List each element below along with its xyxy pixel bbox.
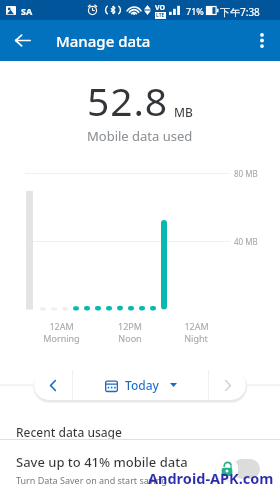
staticText: VO bbox=[155, 3, 166, 13]
staticText: 71% bbox=[186, 5, 204, 17]
button[interactable]: Previous day bbox=[34, 370, 72, 400]
staticText: 下午7:38 bbox=[220, 5, 260, 19]
staticText: 80 MB bbox=[234, 168, 258, 179]
staticText: Mobile data used bbox=[87, 127, 193, 145]
staticText: Morning bbox=[43, 332, 80, 344]
staticText: 12AM bbox=[49, 320, 74, 332]
button[interactable]: More options bbox=[244, 20, 280, 61]
staticText: 52.8 bbox=[87, 74, 168, 127]
staticText: SA bbox=[21, 5, 33, 17]
staticText: Android-APK.com bbox=[148, 468, 274, 488]
staticText: Today bbox=[125, 377, 159, 393]
button[interactable]: Save up to 41% mobile data bbox=[0, 440, 280, 498]
staticText: MB bbox=[174, 104, 193, 120]
staticText: 12AM bbox=[184, 320, 209, 332]
staticText: LTE bbox=[156, 12, 165, 19]
staticText: Recent data usage bbox=[16, 424, 122, 440]
button[interactable]: Back bbox=[0, 20, 44, 61]
staticText: Noon bbox=[118, 332, 142, 344]
staticText: Save up to 41% mobile data bbox=[16, 453, 188, 471]
staticText: Manage data bbox=[56, 31, 151, 51]
button[interactable]: Data Saver toggle bbox=[214, 456, 260, 482]
staticText: Turn Data Saver on and start saving bbox=[16, 474, 167, 486]
staticText: 12PM bbox=[118, 320, 142, 332]
button[interactable]: Next day bbox=[209, 370, 246, 400]
staticText: 40 MB bbox=[234, 236, 258, 247]
button[interactable]: Today bbox=[73, 370, 208, 400]
staticText: Night bbox=[184, 332, 208, 344]
